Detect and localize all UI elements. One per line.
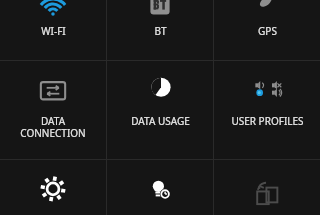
button[interactable]: WI-FI [0, 0, 106, 60]
button[interactable]: Auto rotate [214, 160, 320, 215]
button[interactable]: BT [107, 0, 213, 60]
staticText: WI-FI [41, 24, 66, 38]
staticText: DATA CONNECTION [20, 114, 86, 140]
button[interactable]: GPS [214, 0, 320, 60]
button[interactable]: USER PROFILES [214, 61, 320, 159]
button[interactable]: DATA USAGE [107, 61, 213, 159]
staticText: GPS [258, 24, 277, 38]
button[interactable]: Screen timeout [107, 160, 213, 215]
staticText: DATA USAGE [131, 114, 190, 128]
button[interactable]: DATA CONNECTION [0, 61, 106, 159]
button[interactable]: Brightness [0, 160, 106, 215]
staticText: USER PROFILES [231, 114, 304, 128]
staticText: BT [154, 24, 167, 38]
